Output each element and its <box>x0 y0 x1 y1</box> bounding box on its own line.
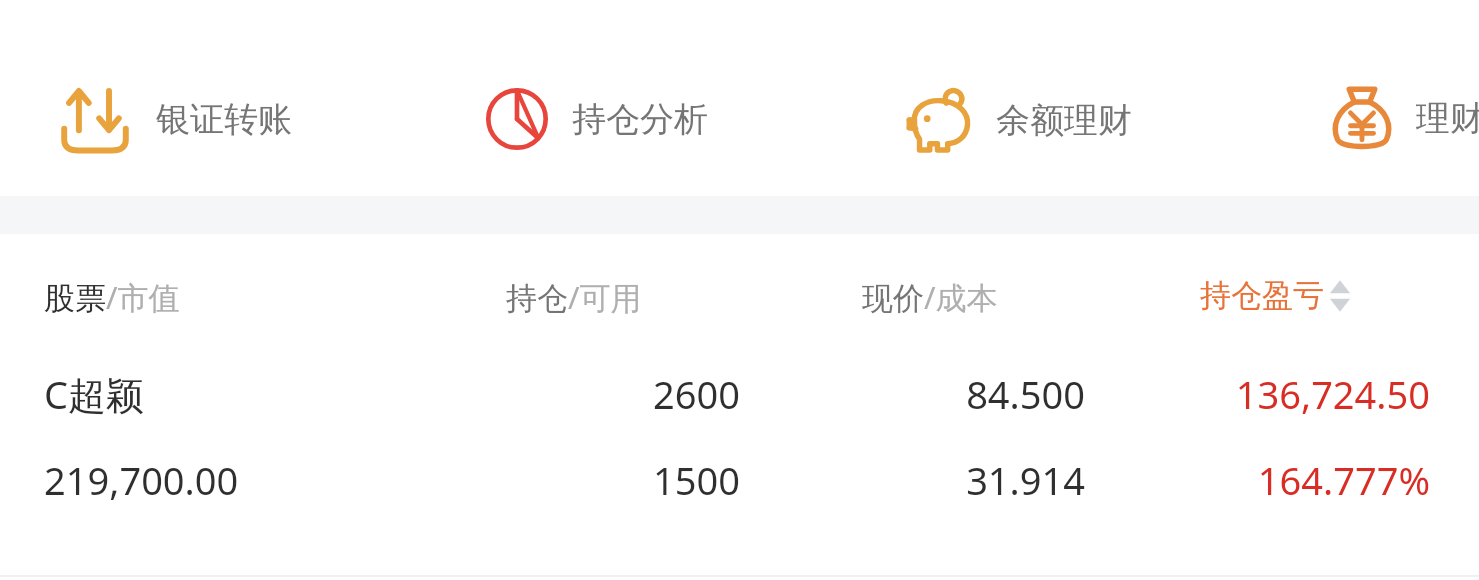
button[interactable]: 银证转账 <box>60 84 292 154</box>
button[interactable]: 现价 <box>862 276 998 318</box>
staticText: /成本 <box>924 276 998 318</box>
staticText: /可用 <box>568 276 642 318</box>
staticText: 136,724.50 <box>1100 368 1430 420</box>
staticText: 现价 <box>862 279 924 318</box>
staticText: 219,700.00 <box>44 454 239 506</box>
staticText: 持仓 <box>506 279 568 318</box>
staticText: 理财 <box>1416 97 1479 140</box>
button[interactable]: 持仓分析 <box>486 88 708 150</box>
staticText: C超颖 <box>44 368 145 420</box>
staticText: /市值 <box>106 276 180 318</box>
staticText: 银证转账 <box>156 98 292 141</box>
button[interactable]: 持仓盈亏 排序 <box>1200 276 1352 315</box>
staticText: 84.500 <box>800 368 1085 420</box>
button[interactable]: 余额理财 <box>908 88 1132 152</box>
staticText: 2600 <box>470 368 740 420</box>
staticText: 1500 <box>470 454 740 506</box>
button[interactable]: 股票 <box>44 276 180 318</box>
staticText: 31.914 <box>800 454 1085 506</box>
staticText: 股票 <box>44 279 106 318</box>
button[interactable]: 持仓 <box>506 276 642 318</box>
button[interactable]: C超颖 <box>0 346 1479 546</box>
staticText: 持仓分析 <box>572 98 708 141</box>
button[interactable]: 理财 <box>1330 86 1479 150</box>
staticText: 164.777% <box>1100 454 1430 506</box>
staticText: 持仓盈亏 <box>1200 276 1324 315</box>
staticText: 余额理财 <box>996 99 1132 142</box>
